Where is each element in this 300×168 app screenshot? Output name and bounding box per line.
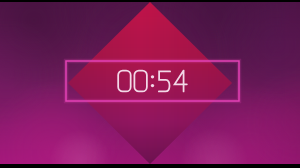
button[interactable]: Countdown timer 00:54 <box>0 0 300 168</box>
